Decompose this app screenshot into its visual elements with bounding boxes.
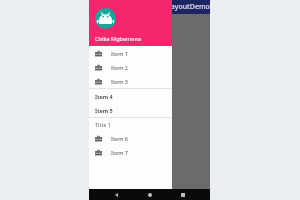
button[interactable]: Item 4 [89, 89, 172, 103]
staticText: Item 3 [111, 78, 128, 85]
button[interactable]: Back [111, 189, 122, 200]
staticText: LayoutDemo [167, 2, 210, 12]
button[interactable]: Item 7 [89, 145, 172, 159]
staticText: Title 1 [95, 121, 111, 128]
button[interactable]: Home [144, 189, 155, 200]
button[interactable]: Recents [177, 189, 188, 200]
button[interactable]: Item 3 [89, 74, 172, 88]
button[interactable]: Item 2 [89, 60, 172, 74]
button[interactable]: Item 5 [89, 103, 172, 117]
staticText: Item 2 [111, 64, 128, 71]
button[interactable]: Item 6 [89, 131, 172, 145]
staticText: Item 6 [111, 135, 128, 142]
staticText: Item 7 [111, 149, 128, 156]
staticText: Item 4 [95, 93, 113, 100]
button[interactable]: Item 1 [89, 46, 172, 60]
staticText: Chike Mgbemena [95, 35, 142, 42]
staticText: Item 5 [95, 107, 113, 114]
button[interactable]: Chike Mgbemena [89, 0, 172, 46]
staticText: Item 1 [111, 50, 128, 57]
